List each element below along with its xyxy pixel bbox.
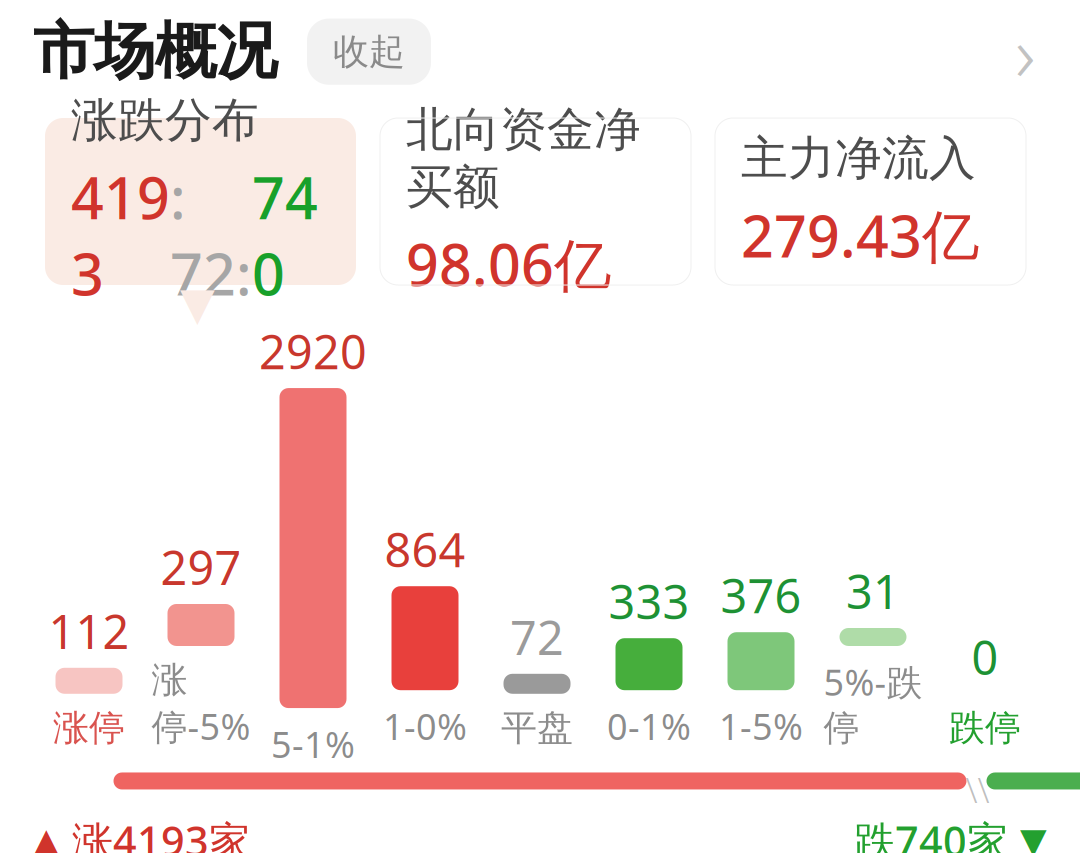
staticText: 涨4193家 [60, 813, 250, 853]
staticText: :72: [170, 159, 252, 311]
staticText: 5%-跌停 [823, 658, 922, 750]
staticText: 0-1% [607, 702, 691, 750]
staticText: \\ [965, 766, 989, 812]
staticText: ▼ [180, 278, 215, 329]
staticText: 740 [252, 159, 318, 311]
staticText: 主力净流入 [741, 130, 976, 187]
staticText: ▼ [1020, 821, 1047, 853]
staticText: 31 [846, 560, 900, 622]
staticText: 市场概况 [33, 14, 277, 89]
staticText: 涨停-5% [151, 658, 250, 750]
staticText: 跌740家 [854, 813, 1020, 853]
staticText: 2920 [259, 320, 367, 382]
staticText: 72 [510, 606, 564, 668]
staticText: 北向资金净买额 [406, 101, 641, 216]
button[interactable]: 收起 [307, 19, 431, 85]
staticText: 涨停 [53, 706, 125, 750]
staticText: 98.06亿 [406, 226, 611, 302]
staticText: 5-1% [271, 720, 355, 768]
staticText: 涨跌分布 [71, 92, 259, 149]
staticText: › [1015, 0, 1035, 103]
staticText: 4193 [71, 159, 170, 311]
button[interactable]: 查看更多 [1003, 22, 1047, 82]
staticText: 1-5% [719, 702, 803, 750]
staticText: 333 [608, 570, 689, 632]
button[interactable]: 主力净流入 [715, 118, 1026, 285]
staticText: 1-0% [383, 702, 467, 750]
staticText: 0 [971, 626, 998, 688]
staticText: 297 [160, 536, 241, 598]
staticText: 279.43亿 [741, 197, 979, 273]
staticText: 跌停 [949, 706, 1021, 750]
staticText: 112 [48, 600, 129, 662]
staticText: 864 [384, 518, 465, 580]
staticText: 收起 [333, 30, 405, 74]
staticText: 376 [720, 564, 801, 626]
button[interactable]: 北向资金净买额 [380, 118, 691, 285]
staticText: ▲ [33, 821, 60, 853]
button[interactable]: 涨跌分布 [45, 118, 356, 285]
staticText: 平盘 [501, 706, 573, 750]
